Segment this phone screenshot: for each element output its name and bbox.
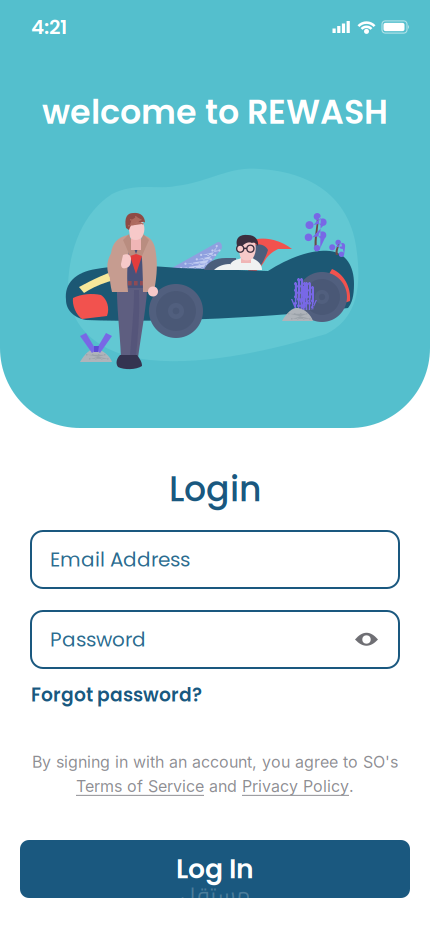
staticText: Terms of Service — [76, 776, 204, 796]
staticText: and — [204, 776, 242, 796]
staticText: welcome to REWASH — [42, 89, 388, 135]
staticText: 4:21 — [31, 13, 67, 41]
staticText: Log In — [176, 850, 254, 888]
staticText: Privacy Policy — [242, 776, 349, 796]
button[interactable]: Forgot password? — [31, 682, 231, 708]
button[interactable]: Email Address — [31, 531, 399, 588]
staticText: مستقل — [179, 874, 250, 916]
staticText: . — [349, 776, 354, 796]
button[interactable]: Terms of Service — [76, 776, 204, 796]
staticText: Email Address — [50, 545, 190, 573]
staticText: Login — [169, 465, 261, 513]
button[interactable]: Log In — [20, 840, 410, 898]
staticText: Forgot password? — [31, 682, 202, 708]
button[interactable]: Privacy Policy — [242, 776, 349, 796]
staticText: By signing in with an account, you agree… — [32, 752, 398, 771]
button[interactable]: Password — [31, 611, 399, 668]
staticText: Password — [50, 625, 146, 653]
